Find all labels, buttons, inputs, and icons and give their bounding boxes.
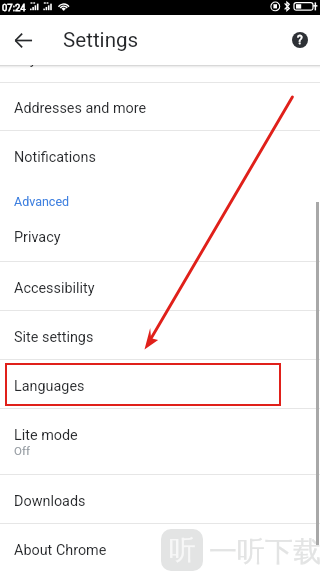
staticText: Accessibility bbox=[14, 280, 95, 297]
button[interactable]: Help bbox=[277, 17, 320, 63]
staticText: Languages bbox=[14, 378, 85, 395]
button[interactable]: Notifications bbox=[0, 131, 320, 179]
staticText: About Chrome bbox=[14, 542, 107, 559]
button[interactable]: Downloads bbox=[0, 475, 320, 523]
staticText: Lite mode bbox=[14, 427, 78, 444]
button[interactable]: About Chrome bbox=[0, 525, 320, 571]
staticText: ? bbox=[297, 33, 303, 47]
staticText: 07:24 bbox=[2, 2, 26, 13]
staticText: Privacy bbox=[14, 229, 61, 246]
staticText: 听 bbox=[169, 533, 196, 567]
staticText: Advanced bbox=[14, 194, 70, 209]
button[interactable]: Languages bbox=[0, 360, 320, 408]
button[interactable]: Accessibility bbox=[0, 262, 320, 310]
staticText: Payment methods bbox=[13, 51, 130, 68]
button[interactable]: Lite mode bbox=[0, 409, 320, 474]
staticText: Addresses and more bbox=[14, 100, 147, 117]
staticText: Off bbox=[14, 444, 30, 457]
staticText: Site settings bbox=[14, 329, 94, 346]
button[interactable]: Site settings bbox=[0, 311, 320, 359]
staticText: Downloads bbox=[14, 493, 86, 510]
button[interactable]: Back bbox=[0, 17, 46, 63]
staticText: Settings bbox=[63, 28, 139, 52]
staticText: Notifications bbox=[14, 149, 96, 166]
button[interactable]: Privacy bbox=[0, 223, 320, 261]
staticText: 一听下载 bbox=[209, 534, 320, 569]
button[interactable]: Addresses and more bbox=[0, 83, 320, 130]
